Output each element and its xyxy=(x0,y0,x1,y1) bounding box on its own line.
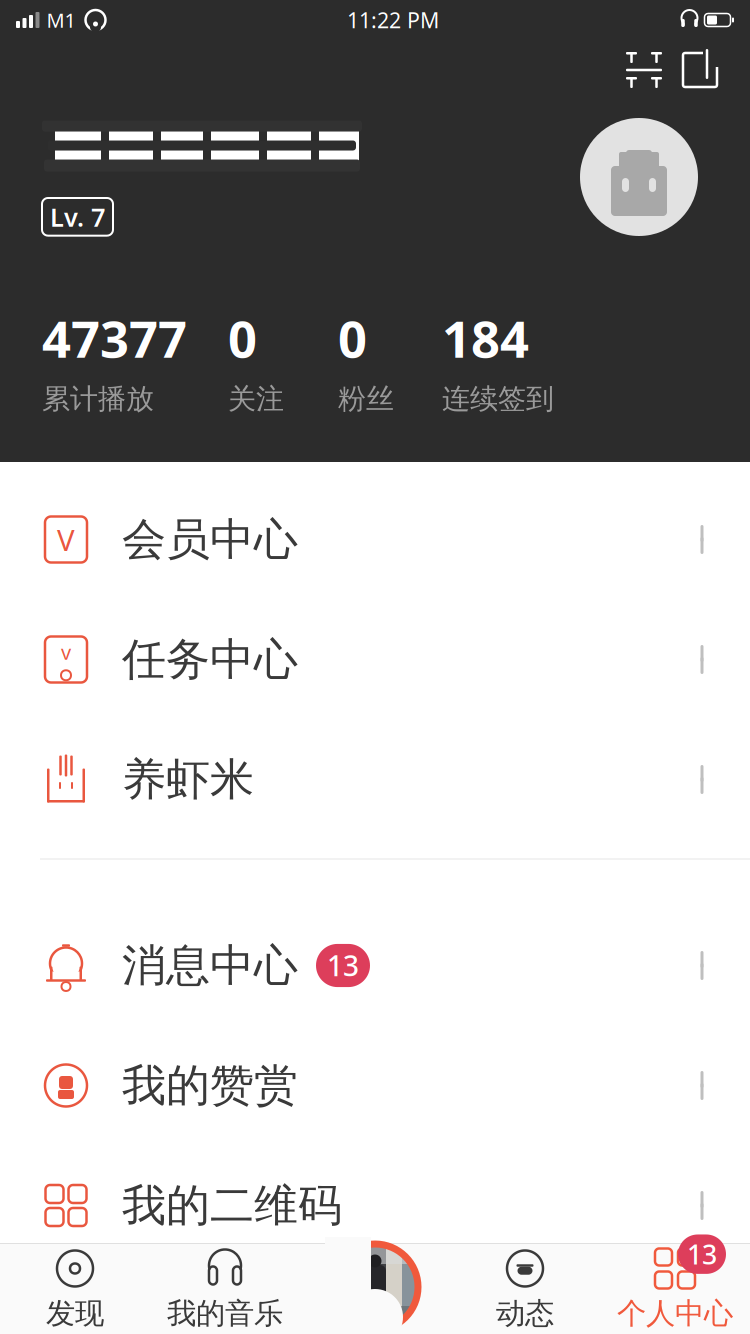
staticText: 个人中心 xyxy=(617,1295,733,1331)
staticText: 动态 xyxy=(496,1295,554,1331)
staticText: 关注 xyxy=(228,382,284,416)
button[interactable]: 正在播放 xyxy=(300,1243,450,1334)
staticText: 我的音乐 xyxy=(167,1295,283,1331)
staticText: 会员中心 xyxy=(122,512,298,566)
staticText: Lv. 7 xyxy=(50,200,105,234)
staticText: 累计播放 xyxy=(42,382,154,416)
staticText: 47377 xyxy=(42,304,187,372)
staticText: 184 xyxy=(442,304,529,372)
button[interactable]: 0 xyxy=(228,304,338,416)
staticText: 0 xyxy=(338,304,367,372)
button[interactable]: 养虾米 xyxy=(0,719,750,839)
button[interactable]: 47377 xyxy=(42,304,228,416)
staticText: 13 xyxy=(687,1236,717,1272)
button[interactable]: 我的赞赏 xyxy=(0,1025,750,1145)
button[interactable]: 消息中心 xyxy=(0,905,750,1025)
button[interactable]: 扫一扫 xyxy=(616,42,672,98)
staticText: 粉丝 xyxy=(338,382,394,416)
button[interactable]: V xyxy=(0,479,750,599)
staticText: 11:22 PM xyxy=(347,6,439,34)
staticText: 我的二维码 xyxy=(122,1178,342,1232)
staticText: V xyxy=(57,520,75,559)
button[interactable]: 发现 xyxy=(0,1243,150,1334)
staticText: v xyxy=(61,639,71,665)
button[interactable]: 动态 xyxy=(450,1243,600,1334)
staticText: 0 xyxy=(228,304,257,372)
staticText: 消息中心 xyxy=(122,938,298,992)
staticText: 我的赞赏 xyxy=(122,1058,298,1112)
staticText: 连续签到 xyxy=(442,382,554,416)
staticText: 养虾米 xyxy=(122,752,254,806)
staticText: 13 xyxy=(327,947,359,984)
button[interactable]: 发布动态 xyxy=(672,42,728,98)
button[interactable]: 0 xyxy=(338,304,442,416)
button[interactable]: v xyxy=(0,599,750,719)
staticText: 任务中心 xyxy=(122,632,298,686)
button[interactable]: 我的二维码 xyxy=(0,1145,750,1265)
staticText: M1 xyxy=(46,7,75,33)
button[interactable]: 我的音乐 xyxy=(150,1243,300,1334)
button[interactable]: 184 xyxy=(442,304,602,416)
staticText: 发现 xyxy=(46,1295,104,1331)
button[interactable]: 13 xyxy=(600,1243,750,1334)
